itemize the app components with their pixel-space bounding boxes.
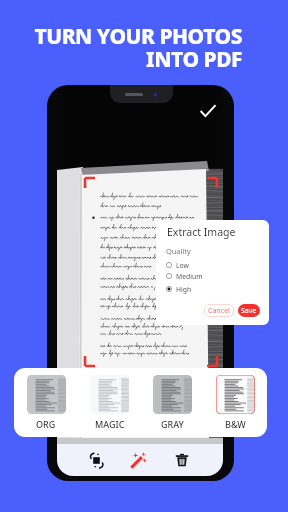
button[interactable]: Rotate [75, 444, 117, 476]
staticText: B&W [225, 418, 246, 430]
button[interactable]: Enhance [117, 444, 160, 476]
staticText: GRAY [161, 418, 184, 430]
button[interactable]: Delete [160, 444, 203, 476]
staticText: Extract Image [167, 225, 236, 239]
button[interactable]: ORG [14, 368, 78, 437]
staticText: MAGIC [95, 418, 125, 430]
button[interactable]: B&W [204, 368, 267, 437]
button[interactable]: Save [238, 304, 260, 317]
button[interactable]: Low [166, 259, 236, 271]
staticText: ORG [36, 418, 56, 430]
staticText: Save [241, 306, 257, 316]
button[interactable]: MAGIC [78, 368, 141, 437]
staticText: Low [176, 261, 189, 270]
staticText: Cancel [208, 306, 230, 316]
button[interactable]: Medium [166, 270, 236, 282]
button[interactable]: GRAY [141, 368, 204, 437]
button[interactable]: High [166, 283, 236, 295]
button[interactable]: Done [196, 99, 220, 123]
staticText: Quality [166, 246, 191, 256]
staticText: High [176, 285, 192, 294]
staticText: TURN YOUR PHOTOS INTO PDF [34, 22, 242, 73]
button[interactable]: Cancel [204, 304, 234, 317]
staticText: Medium [176, 272, 203, 281]
